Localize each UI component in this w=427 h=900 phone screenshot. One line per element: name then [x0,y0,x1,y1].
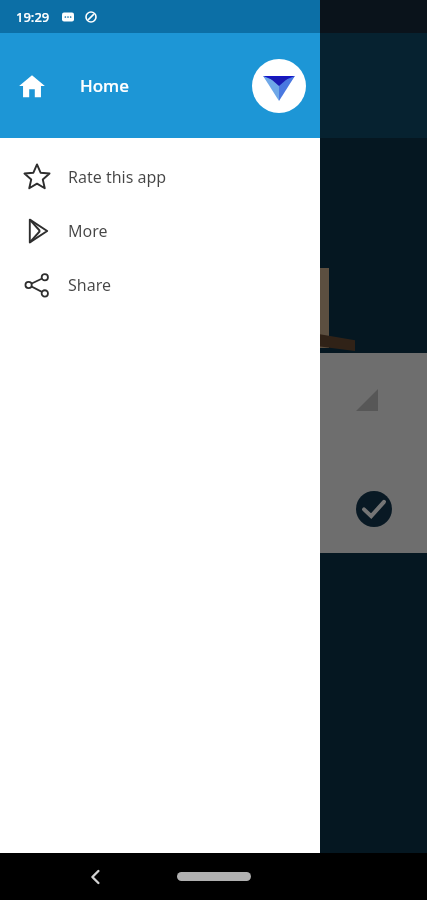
button[interactable]: Back [86,867,106,887]
button[interactable]: More [0,204,320,258]
button[interactable]: Share [0,258,320,312]
button[interactable]: Home [177,872,251,881]
staticText: More [68,220,108,242]
staticText: Share [68,274,111,296]
button[interactable]: Rate this app [0,150,320,204]
other: Home [18,72,46,100]
staticText: Home [80,74,129,97]
staticText: Rate this app [68,166,167,188]
button[interactable]: App logo [252,59,306,113]
staticText: 19:29 [16,8,50,26]
